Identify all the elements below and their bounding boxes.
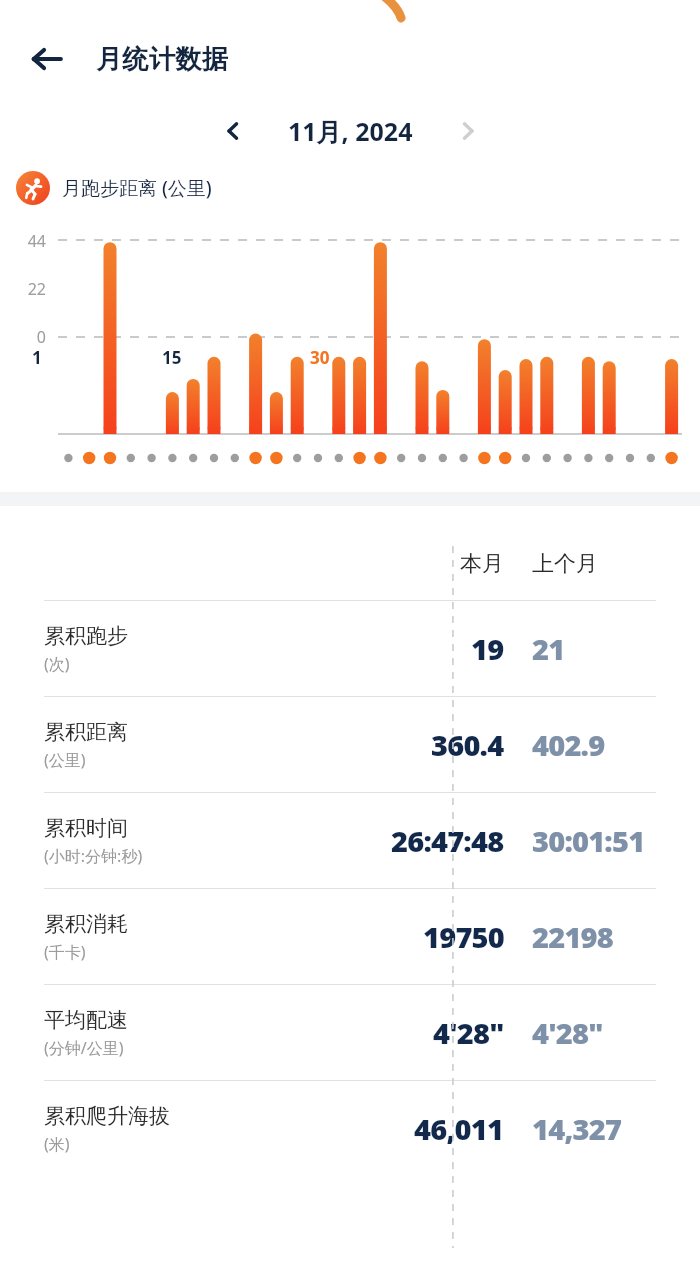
staticText: 22 [0, 278, 46, 300]
button[interactable]: Back [18, 30, 76, 88]
staticText: (千卡) [44, 941, 86, 963]
staticText: 0 [0, 326, 46, 348]
staticText: (分钟/公里) [44, 1037, 124, 1059]
staticText: 1 [32, 346, 42, 369]
staticText: 30 [310, 346, 330, 369]
staticText: 30:01:51 [532, 821, 645, 860]
button[interactable]: 累积跑步 [18, 601, 682, 696]
staticText: 402.9 [532, 725, 605, 764]
staticText: 360.4 [431, 725, 504, 764]
staticText: 22198 [532, 917, 613, 956]
staticText: 4'28" [532, 1013, 603, 1052]
staticText: 4'28" [433, 1013, 504, 1052]
button[interactable]: 平均配速 [18, 985, 682, 1080]
staticText: 19750 [423, 917, 504, 956]
staticText: 14,327 [532, 1109, 622, 1148]
staticText: 上个月 [532, 550, 598, 578]
staticText: 21 [532, 629, 565, 668]
button[interactable]: 累积时间 [18, 793, 682, 888]
staticText: 累积时间 [44, 815, 128, 841]
button[interactable]: 累积消耗 [18, 889, 682, 984]
staticText: 月跑步距离 (公里) [62, 175, 212, 201]
staticText: 累积爬升海拔 [44, 1103, 170, 1129]
staticText: 19 [471, 629, 504, 668]
staticText: (公里) [44, 749, 86, 771]
staticText: 11月, 2024 [288, 114, 413, 148]
staticText: (米) [44, 1133, 70, 1155]
staticText: 26:47:48 [391, 821, 504, 860]
staticText: 月统计数据 [96, 43, 229, 76]
staticText: 本月 [460, 550, 504, 578]
staticText: 平均配速 [44, 1007, 128, 1033]
staticText: 15 [162, 346, 182, 369]
staticText: 累积跑步 [44, 623, 128, 649]
staticText: 累积距离 [44, 719, 128, 745]
button[interactable]: 累积爬升海拔 [18, 1081, 682, 1176]
staticText: 46,011 [414, 1109, 504, 1148]
button[interactable]: Next month [445, 108, 491, 154]
staticText: 44 [0, 230, 46, 252]
button[interactable]: 累积距离 [18, 697, 682, 792]
button[interactable]: Previous month [210, 108, 256, 154]
staticText: 累积消耗 [44, 911, 128, 937]
staticText: (次) [44, 653, 70, 675]
staticText: (小时:分钟:秒) [44, 845, 143, 867]
